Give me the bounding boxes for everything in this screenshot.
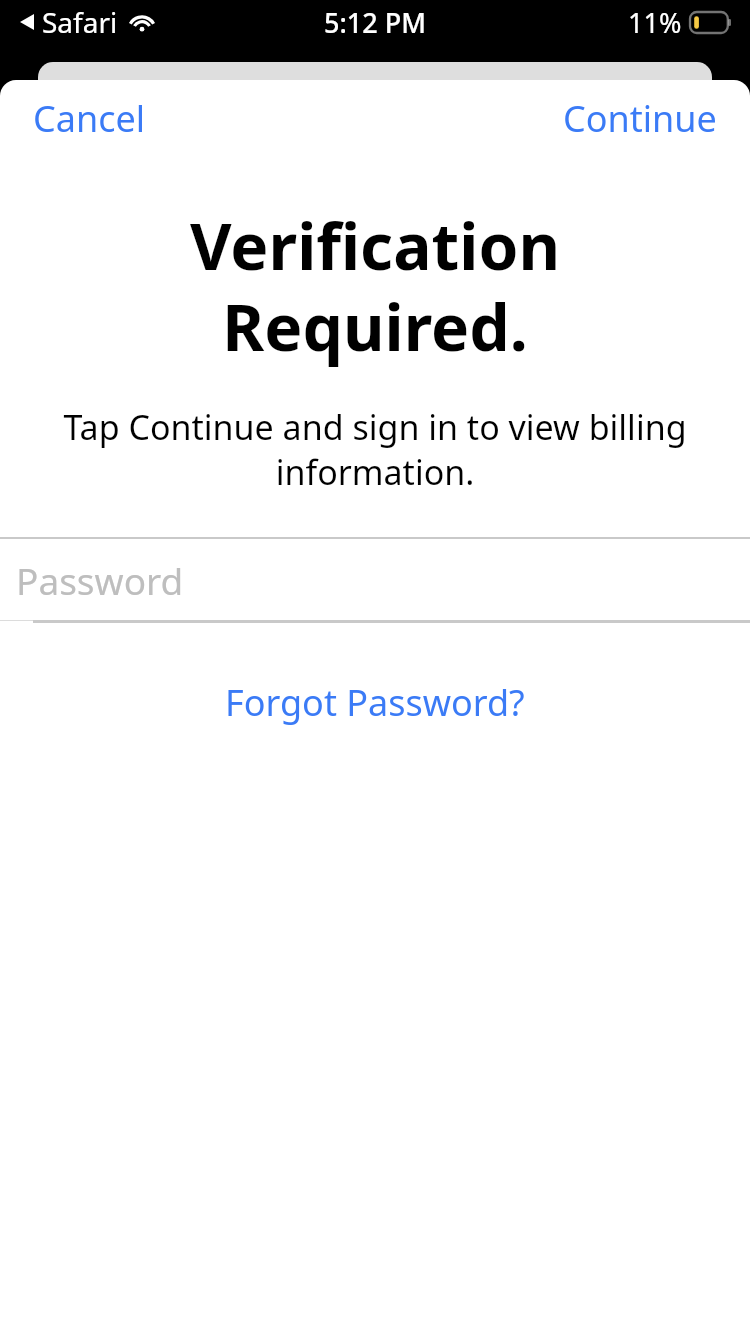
staticText: Forgot Password? bbox=[225, 678, 525, 727]
staticText: 11% bbox=[628, 4, 682, 41]
staticText: Cancel bbox=[33, 94, 146, 143]
staticText: Verification Required. bbox=[40, 202, 710, 370]
button[interactable]: Forgot Password? bbox=[195, 668, 555, 737]
button[interactable]: Continue bbox=[530, 84, 750, 153]
staticText: Safari bbox=[42, 3, 118, 41]
button[interactable]: Password bbox=[0, 539, 750, 620]
button[interactable]: Cancel bbox=[0, 84, 179, 153]
staticText: Continue bbox=[563, 94, 717, 143]
button[interactable]: Back to Safari bbox=[20, 3, 156, 41]
staticText: Password bbox=[16, 555, 184, 605]
staticText: 5:12 PM bbox=[324, 4, 426, 41]
staticText: Tap Continue and sign in to view billing… bbox=[60, 404, 690, 495]
